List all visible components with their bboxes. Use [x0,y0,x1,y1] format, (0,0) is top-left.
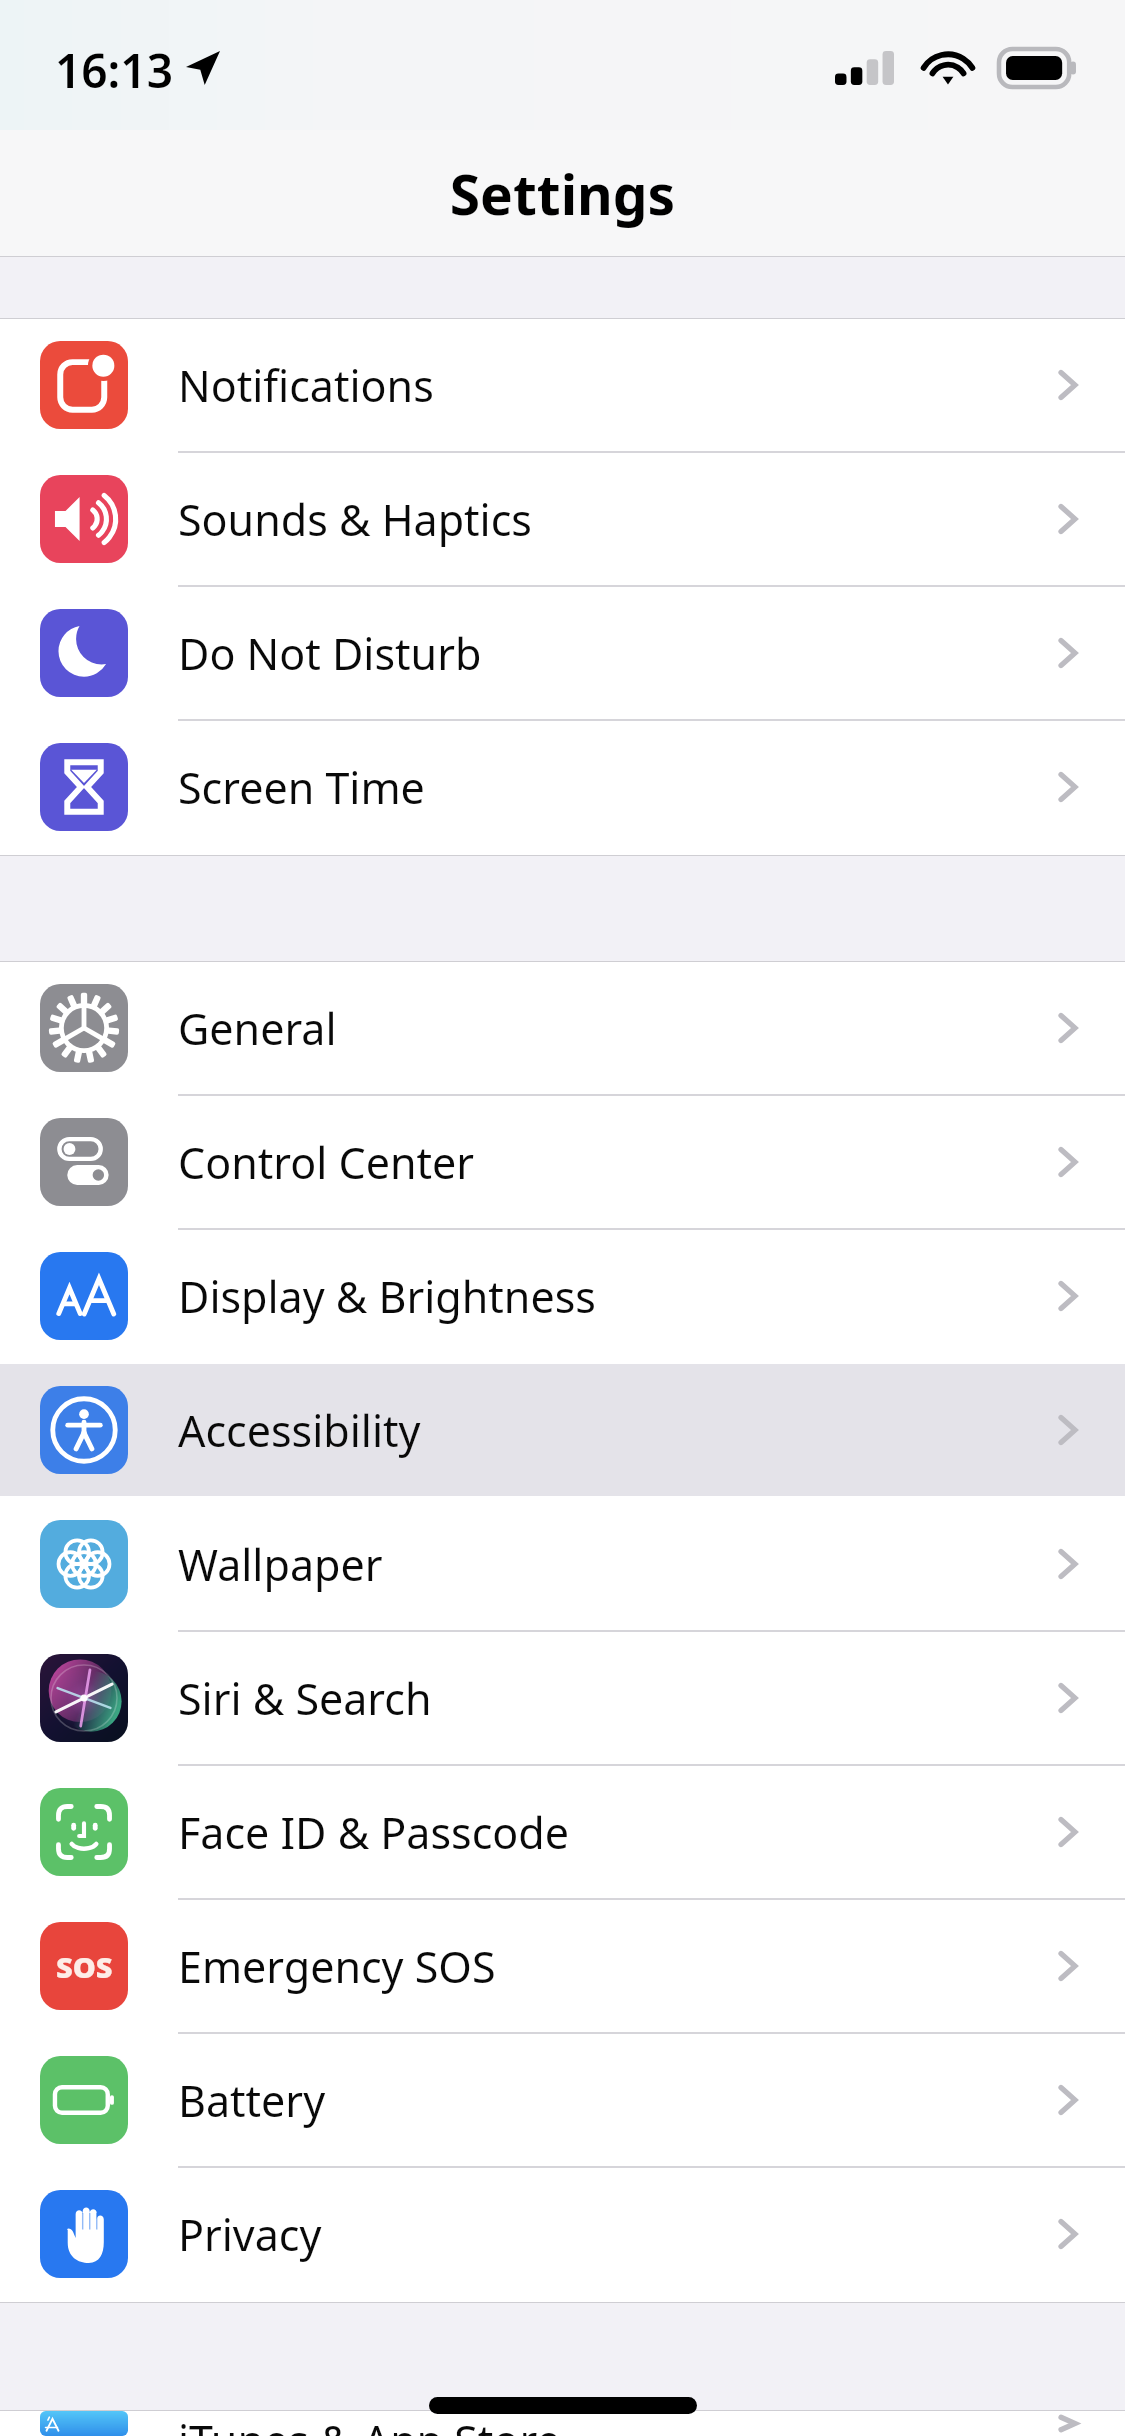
staticText: Emergency SOS [178,1937,496,1996]
button[interactable]: Face ID & Passcode [0,1766,1125,1898]
staticText: Battery [178,2071,326,2130]
staticText: Accessibility [178,1401,421,1460]
button[interactable]: Screen Time [0,721,1125,853]
button[interactable]: iTunes & App Store [0,2411,1125,2436]
staticText: Display & Brightness [178,1267,596,1326]
staticText: Settings [0,156,1125,231]
staticText: iTunes & App Store [178,2411,561,2436]
button[interactable]: Siri & Search [0,1632,1125,1764]
staticText: Do Not Disturb [178,624,482,683]
staticText: Notifications [178,356,434,415]
button[interactable]: Battery [0,2034,1125,2166]
staticText: Siri & Search [178,1669,432,1728]
staticText: Sounds & Haptics [178,490,532,549]
button[interactable]: Wallpaper [0,1498,1125,1630]
button[interactable]: Notifications [0,319,1125,451]
button[interactable]: General [0,962,1125,1094]
button[interactable]: Display & Brightness [0,1230,1125,1362]
button[interactable]: Sounds & Haptics [0,453,1125,585]
button[interactable]: Accessibility [0,1364,1125,1496]
staticText: Wallpaper [178,1535,383,1594]
button[interactable]: SOS [0,1900,1125,2032]
staticText: General [178,999,337,1058]
button[interactable]: Control Center [0,1096,1125,1228]
staticText: Privacy [178,2205,322,2264]
button[interactable]: Do Not Disturb [0,587,1125,719]
staticText: Control Center [178,1133,475,1192]
button[interactable]: Privacy [0,2168,1125,2300]
staticText: Face ID & Passcode [178,1803,569,1862]
staticText: SOS [56,1947,113,1986]
staticText: 16:13 [55,39,173,102]
staticText: Screen Time [178,758,425,817]
